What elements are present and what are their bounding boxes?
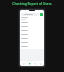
button[interactable] bbox=[20, 33, 44, 37]
button[interactable] bbox=[20, 25, 44, 29]
button[interactable] bbox=[20, 37, 44, 41]
button[interactable] bbox=[20, 45, 44, 49]
button[interactable] bbox=[20, 29, 44, 33]
button[interactable] bbox=[20, 21, 44, 25]
button[interactable]: Users bbox=[32, 61, 37, 66]
button[interactable]: Home bbox=[21, 61, 26, 66]
staticText: Checking Report of Users bbox=[0, 2, 64, 6]
button[interactable] bbox=[20, 16, 44, 21]
button[interactable]: Add report bbox=[40, 13, 43, 16]
button[interactable] bbox=[21, 13, 39, 16]
button[interactable]: Settings bbox=[38, 61, 43, 66]
button[interactable]: Reports bbox=[27, 61, 32, 66]
button[interactable] bbox=[20, 41, 44, 45]
